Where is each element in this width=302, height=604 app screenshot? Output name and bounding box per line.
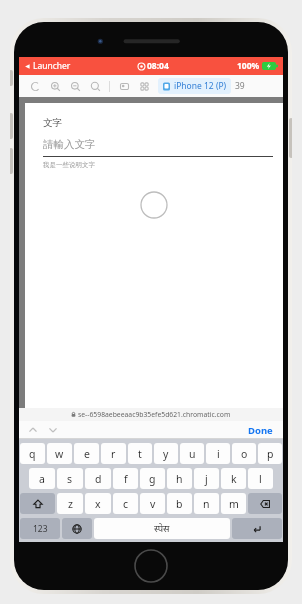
staticText: o [241,447,248,461]
staticText: h [176,472,183,486]
staticText: स्पेस [154,522,170,535]
staticText: 100% [237,60,260,72]
staticText: 123 [33,523,48,535]
button[interactable]: i [206,443,230,464]
button[interactable]: 123 [20,518,60,539]
button[interactable]: iPhone 12 (P) [158,78,231,94]
staticText: g [149,472,156,486]
button[interactable]: Grid [134,76,154,96]
button[interactable]: Zoom in [45,76,65,96]
button[interactable]: Screenshot [114,76,134,96]
button[interactable]: Reload [25,76,45,96]
button[interactable]: r [101,443,126,464]
button[interactable]: q [20,443,45,464]
button[interactable]: स्पेस [94,518,230,539]
button[interactable]: x [85,493,111,514]
staticText: 我是一些说明文字 [43,161,95,169]
button[interactable]: b [167,493,192,514]
staticText: x [95,497,101,511]
staticText: 08:04 [147,60,169,72]
button[interactable]: a [29,468,55,489]
button[interactable]: d [85,468,111,489]
button[interactable]: g [140,468,165,489]
staticText: r [111,447,116,461]
button[interactable]: Previous field [26,423,40,437]
button[interactable]: Zoom reset [85,76,105,96]
staticText: iPhone 12 (P) [174,80,227,92]
button[interactable]: n [194,493,219,514]
staticText: l [259,472,262,486]
staticText: d [95,472,102,486]
button[interactable]: o [232,443,256,464]
staticText: se--6598aebeeaac9b35efe5d621.chromatic.c… [78,410,231,419]
staticText: j [205,472,208,486]
staticText: n [203,497,210,511]
staticText: y [163,447,169,461]
staticText: i [217,447,220,461]
button[interactable]: Next field [46,423,60,437]
staticText: Done [248,424,273,437]
staticText: 文字 [43,117,62,129]
staticText: w [55,447,64,461]
staticText: a [39,472,45,486]
staticText: c [123,497,129,511]
staticText: z [68,497,73,511]
button[interactable]: Shift [20,493,55,514]
button[interactable]: v [140,493,165,514]
button[interactable]: w [47,443,72,464]
button[interactable]: Back to Launcher [24,60,71,72]
button[interactable]: u [180,443,204,464]
staticText: s [67,472,73,486]
button[interactable]: se--6598aebeeaac9b35efe5d621.chromatic.c… [19,408,283,421]
button[interactable]: l [248,468,273,489]
staticText: q [29,447,36,461]
button[interactable]: f [113,468,138,489]
button[interactable]: Return [232,518,282,539]
staticText: v [150,497,156,511]
button[interactable]: m [221,493,246,514]
button[interactable]: s [57,468,83,489]
staticText: t [138,447,142,461]
staticText: Launcher [33,60,71,72]
button[interactable]: c [113,493,138,514]
button[interactable]: z [57,493,83,514]
button[interactable]: e [74,443,99,464]
button[interactable]: Backspace [248,493,282,514]
staticText: f [124,472,128,486]
button[interactable]: k [221,468,246,489]
button[interactable]: p [258,443,282,464]
button[interactable]: Switch keyboard [62,518,92,539]
staticText: u [189,447,196,461]
button[interactable]: Done [245,422,276,439]
staticText: b [176,497,183,511]
button[interactable]: h [167,468,192,489]
button[interactable]: j [194,468,219,489]
staticText: m [229,497,239,511]
button[interactable]: t [128,443,152,464]
staticText: 請輸入文字 [43,138,96,151]
button[interactable]: y [154,443,178,464]
staticText: k [231,472,237,486]
button[interactable]: Zoom out [65,76,85,96]
staticText: p [267,447,274,461]
staticText: 39 [235,80,245,92]
staticText: e [84,447,90,461]
button[interactable]: 請輸入文字 [43,138,273,151]
